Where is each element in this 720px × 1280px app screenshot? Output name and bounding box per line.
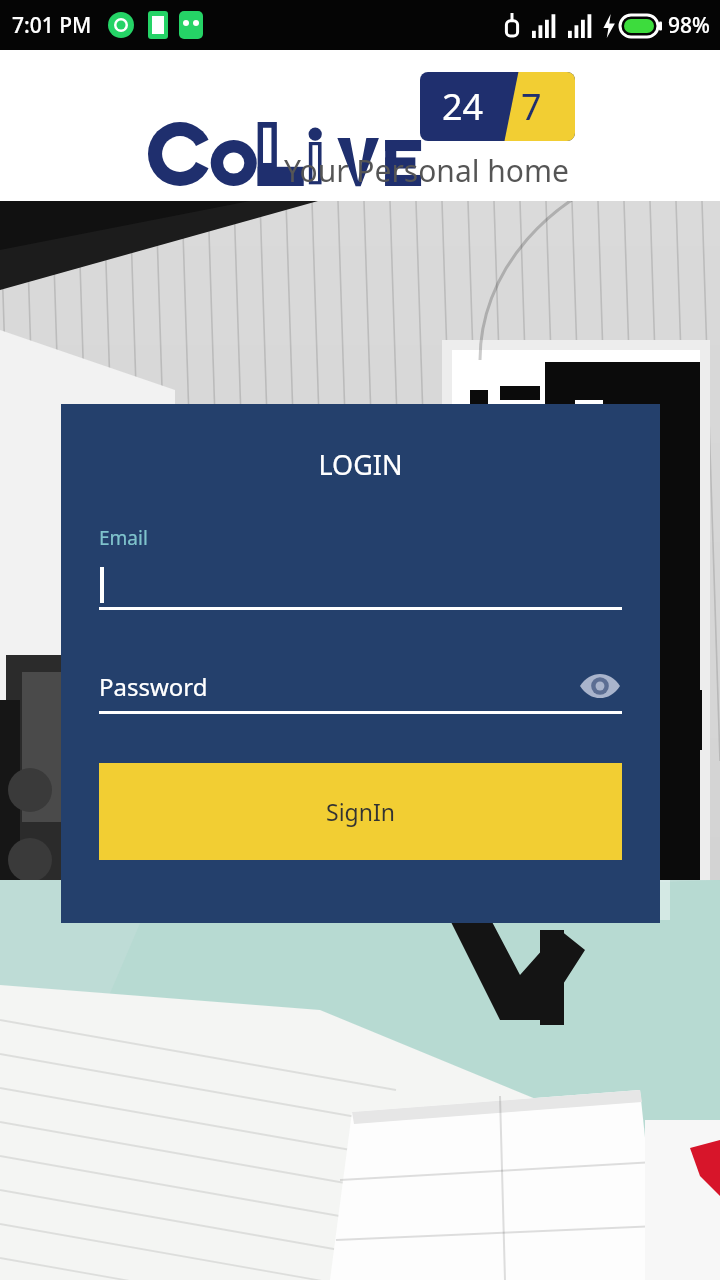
staticText: 7 xyxy=(521,82,542,131)
button[interactable]: SignIn xyxy=(99,763,622,860)
staticText: 24 xyxy=(442,82,484,131)
button[interactable]: Email xyxy=(99,525,622,610)
staticText: Email xyxy=(99,525,148,551)
button[interactable]: Password xyxy=(99,664,622,714)
staticText: Your Personal home xyxy=(284,150,569,191)
staticText: SignIn xyxy=(326,796,395,827)
staticText: LOGIN xyxy=(61,446,660,483)
button[interactable]: Show password xyxy=(578,664,622,708)
staticText: 7:01 PM xyxy=(12,11,92,40)
staticText: 98% xyxy=(668,11,710,40)
staticText: Password xyxy=(99,670,208,703)
